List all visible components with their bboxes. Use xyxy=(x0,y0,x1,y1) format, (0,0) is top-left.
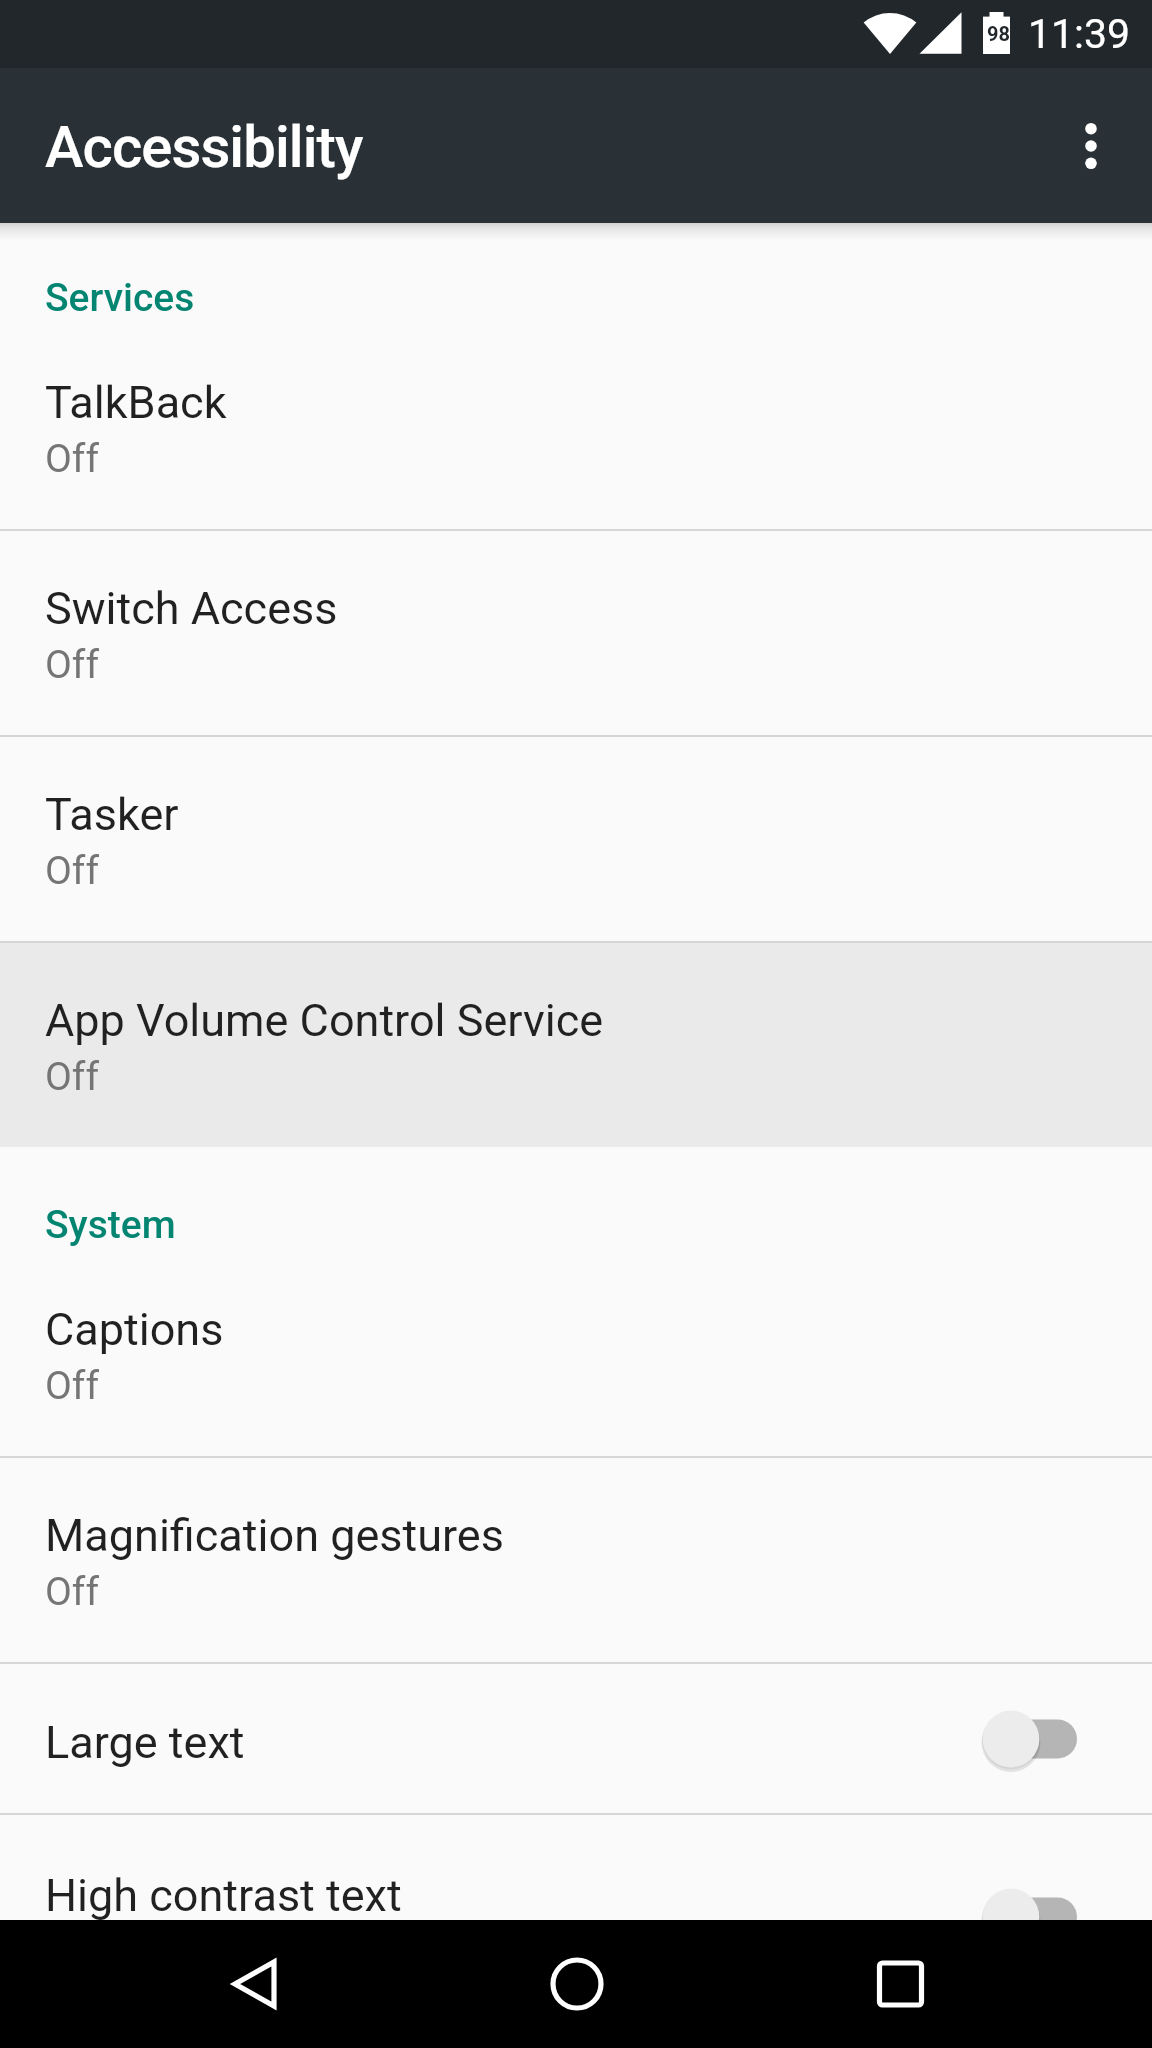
button[interactable]: High contrast text xyxy=(0,1815,1152,2019)
staticText: Off xyxy=(45,848,99,894)
staticText: Tasker xyxy=(45,788,179,841)
button[interactable]: Toggle Large text xyxy=(981,1699,1101,1779)
staticText: Switch Access xyxy=(45,582,338,635)
button[interactable]: More options xyxy=(1049,104,1133,188)
button[interactable]: App Volume Control Service xyxy=(0,943,1152,1147)
button[interactable]: Magnification gestures xyxy=(0,1458,1152,1662)
button[interactable]: Back xyxy=(194,1920,315,2048)
staticText: Off xyxy=(45,642,99,688)
staticText: System xyxy=(45,1202,176,1248)
staticText: Accessibility xyxy=(45,113,363,181)
staticText: 98 xyxy=(987,22,1010,45)
staticText: Large text xyxy=(45,1716,245,1769)
button[interactable]: Recent apps xyxy=(840,1920,961,2048)
staticText: Off xyxy=(45,436,99,482)
staticText: Off xyxy=(45,1363,99,1409)
staticText: App Volume Control Service xyxy=(45,994,604,1047)
button[interactable]: Switch Access xyxy=(0,531,1152,735)
button[interactable]: Tasker xyxy=(0,737,1152,941)
staticText: Off xyxy=(45,1569,99,1615)
staticText: TalkBack xyxy=(45,376,227,429)
staticText: 11:39 xyxy=(1028,10,1131,58)
button[interactable]: Large text xyxy=(0,1664,1152,1813)
staticText: High contrast text xyxy=(45,1869,402,1922)
staticText: Off xyxy=(45,1054,99,1100)
button[interactable]: TalkBack xyxy=(0,325,1152,529)
staticText: Captions xyxy=(45,1303,224,1356)
staticText: Magnification gestures xyxy=(45,1509,504,1562)
button[interactable]: Home xyxy=(517,1920,637,2048)
staticText: Services xyxy=(45,275,195,321)
button[interactable]: Captions xyxy=(0,1252,1152,1456)
button[interactable]: Toggle High contrast text xyxy=(981,1877,1101,1957)
